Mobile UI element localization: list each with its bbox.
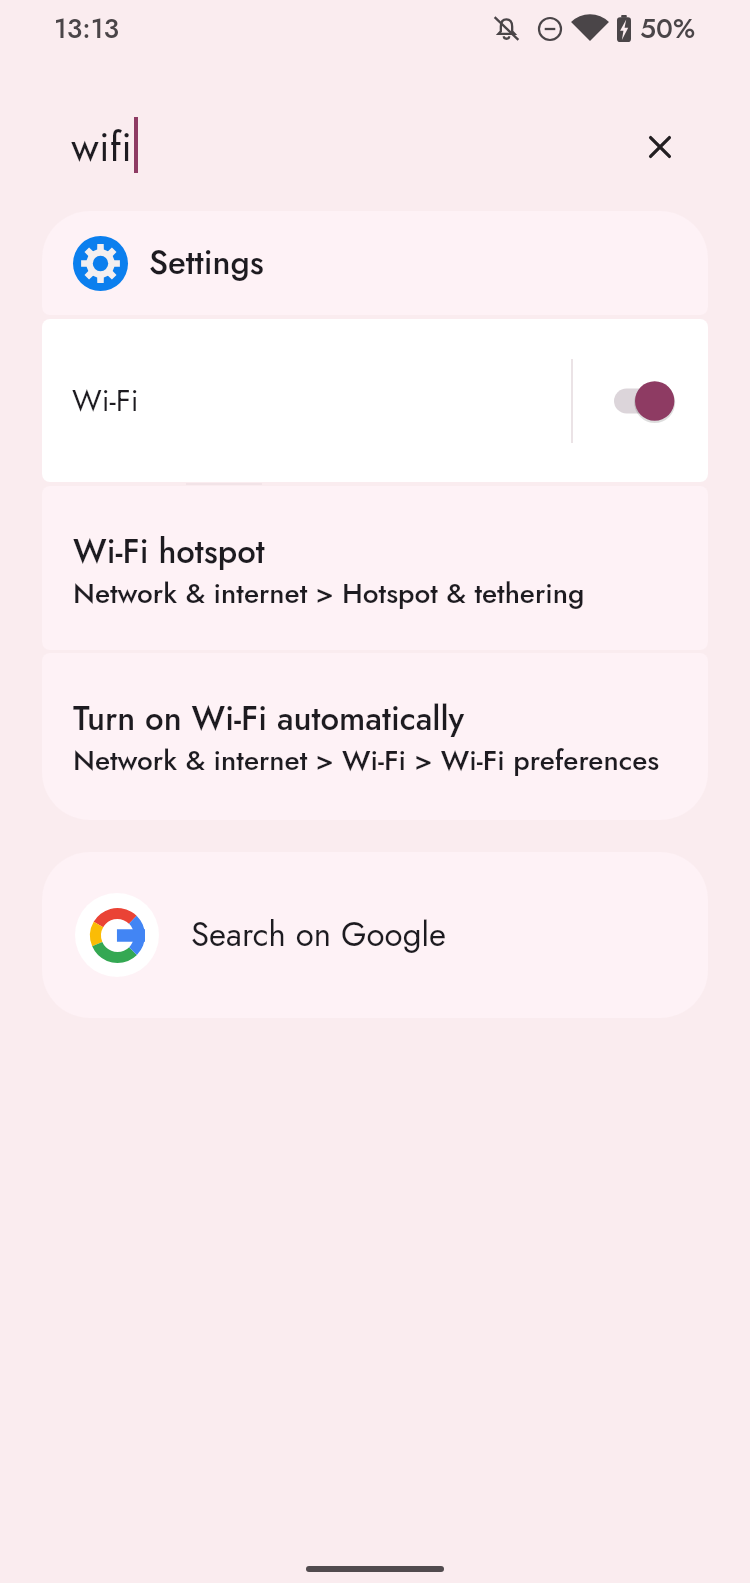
staticText: 50% bbox=[640, 9, 696, 48]
staticText: 13:13 bbox=[54, 9, 120, 48]
staticText: Network & internet > Wi-Fi > Wi-Fi prefe… bbox=[73, 740, 660, 780]
staticText: Wi-Fi bbox=[72, 379, 139, 422]
staticText: Network & internet > Hotspot & tethering bbox=[73, 573, 585, 613]
button[interactable]: Wi-Fi hotspot bbox=[42, 486, 708, 650]
button[interactable]: Turn on Wi-Fi automatically bbox=[42, 653, 708, 820]
button[interactable]: Settings bbox=[42, 211, 708, 315]
staticText: Turn on Wi-Fi automatically bbox=[73, 695, 465, 743]
staticText: wifi bbox=[71, 117, 132, 176]
staticText: Search on Google bbox=[191, 911, 447, 959]
staticText: Wi-Fi hotspot bbox=[73, 528, 265, 576]
button[interactable]: Clear search bbox=[632, 119, 688, 175]
button[interactable]: Search on Google bbox=[42, 852, 708, 1018]
button[interactable]: Wi-Fi bbox=[42, 319, 708, 482]
staticText: Settings bbox=[149, 239, 264, 287]
